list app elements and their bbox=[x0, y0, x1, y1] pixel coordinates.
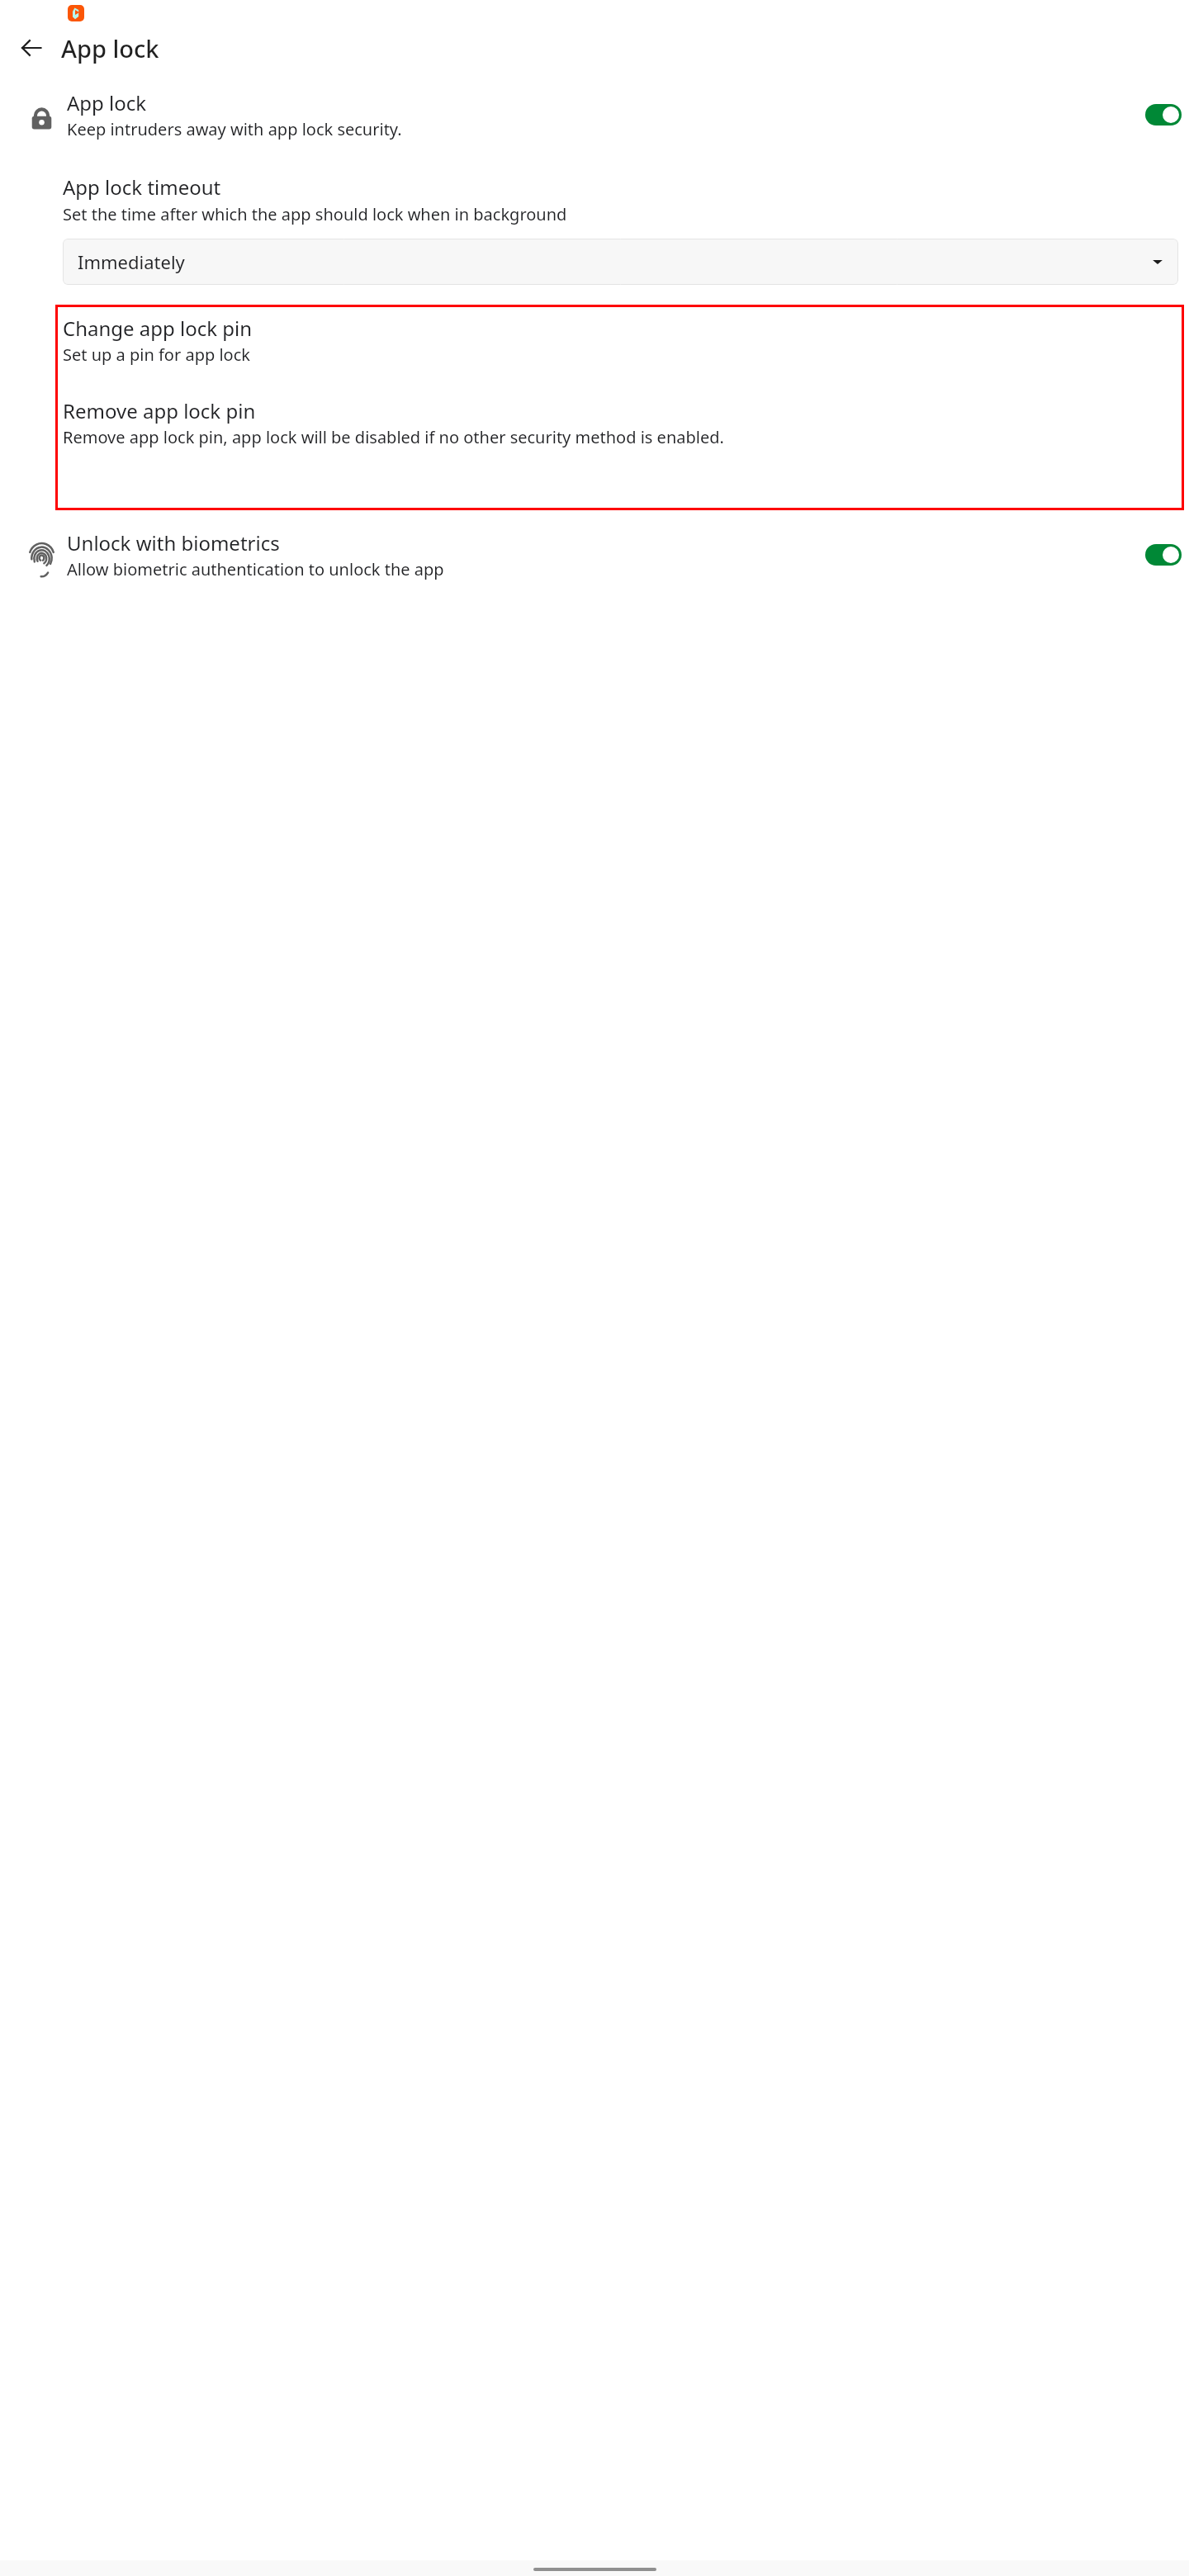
staticText: Remove app lock pin, app lock will be di… bbox=[63, 426, 724, 448]
staticText: Unlock with biometrics bbox=[67, 529, 280, 556]
button[interactable]: Remove app lock pin bbox=[59, 395, 1180, 450]
staticText: Allow biometric authentication to unlock… bbox=[67, 558, 444, 580]
staticText: Immediately bbox=[78, 249, 185, 274]
staticText: Change app lock pin bbox=[63, 315, 253, 342]
staticText: App lock timeout bbox=[63, 173, 221, 201]
staticText: App lock bbox=[61, 32, 159, 64]
button[interactable]: Unlock with biometrics bbox=[0, 529, 1189, 580]
staticText: App lock bbox=[67, 89, 147, 116]
button[interactable]: App lock bbox=[0, 89, 1189, 140]
button[interactable]: Toggle on bbox=[1145, 104, 1182, 125]
staticText: Set the time after which the app should … bbox=[63, 203, 567, 225]
staticText: Remove app lock pin bbox=[63, 397, 256, 424]
button[interactable]: Change app lock pin bbox=[59, 313, 1180, 367]
button[interactable]: Back bbox=[13, 30, 50, 66]
button[interactable]: Toggle on bbox=[1145, 544, 1182, 566]
staticText: Keep intruders away with app lock securi… bbox=[67, 118, 402, 140]
staticText: Set up a pin for app lock bbox=[63, 343, 250, 366]
button[interactable]: Immediately bbox=[63, 239, 1178, 285]
